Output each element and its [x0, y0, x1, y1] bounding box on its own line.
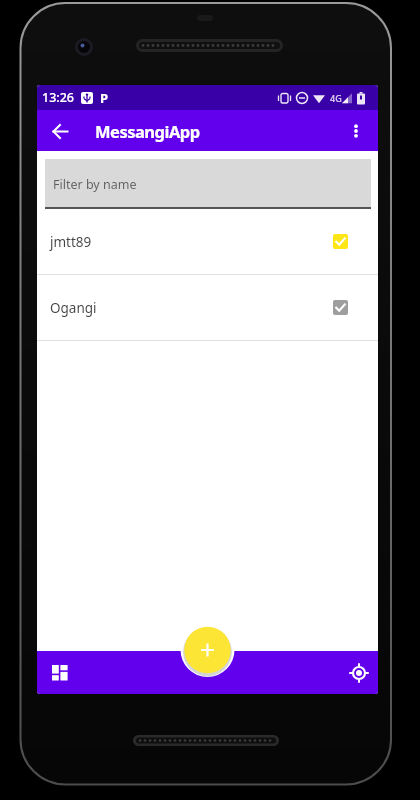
button[interactable] — [333, 300, 348, 315]
button[interactable]: Ogangi — [37, 275, 378, 340]
button[interactable] — [343, 118, 368, 143]
button[interactable]: Filter by name — [45, 159, 371, 209]
button[interactable] — [44, 115, 76, 147]
staticText: Ogangi — [50, 299, 97, 317]
button[interactable] — [44, 657, 75, 688]
button[interactable]: jmtt89 — [37, 209, 378, 274]
staticText: P — [100, 89, 109, 107]
button[interactable] — [343, 657, 374, 688]
staticText: 4G — [330, 92, 342, 104]
staticText: jmtt89 — [50, 233, 92, 251]
staticText: MessangiApp — [95, 120, 200, 142]
button[interactable] — [184, 627, 231, 674]
staticText: 13:26 — [42, 89, 75, 106]
button[interactable] — [333, 234, 348, 249]
staticText: Filter by name — [53, 176, 137, 193]
